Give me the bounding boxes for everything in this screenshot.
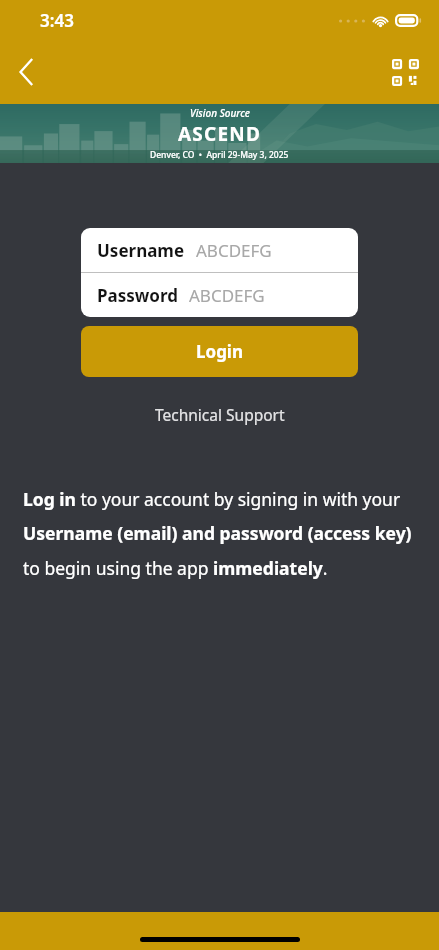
staticText: Login	[196, 340, 244, 363]
staticText: ASCEND	[178, 121, 262, 147]
button[interactable]: Password	[81, 273, 358, 317]
button[interactable]: Technical Support	[141, 399, 299, 430]
staticText: Username	[97, 239, 185, 262]
staticText: Vision Source	[190, 106, 250, 120]
button[interactable]: Login	[81, 326, 358, 377]
staticText: Password	[97, 284, 178, 307]
staticText: 3:43	[40, 9, 74, 32]
staticText: Log in to your account by signing in wit…	[23, 487, 419, 581]
button[interactable]: Back	[0, 46, 52, 98]
button[interactable]: Scan QR code	[383, 50, 427, 94]
button[interactable]: Username	[81, 228, 358, 272]
staticText: Technical Support	[155, 404, 285, 425]
staticText: Denver, CO • April 29-May 3, 2025	[150, 149, 289, 161]
staticText: ABCDEFG	[189, 284, 265, 307]
staticText: ABCDEFG	[196, 239, 272, 262]
